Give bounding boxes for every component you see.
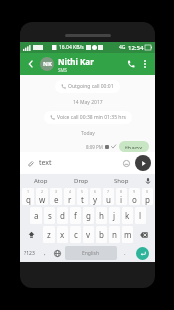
staticText: 1 xyxy=(27,189,30,194)
staticText: w xyxy=(39,194,46,205)
staticText: 2 xyxy=(41,189,44,194)
button[interactable]: English xyxy=(65,246,117,260)
staticText: k xyxy=(125,210,130,221)
staticText: . xyxy=(124,249,126,257)
button[interactable]: b xyxy=(96,226,107,243)
button[interactable]: d xyxy=(57,207,68,224)
button[interactable]: Send xyxy=(135,155,151,171)
button[interactable]: l xyxy=(135,207,146,224)
button[interactable]: Shop xyxy=(101,174,141,187)
button[interactable]: x xyxy=(57,226,68,243)
button[interactable]: More options xyxy=(139,58,151,70)
button[interactable]: s xyxy=(44,207,55,224)
button[interactable]: 3 xyxy=(50,188,62,205)
staticText: Outgoing call 00:01 xyxy=(68,83,114,90)
staticText: r xyxy=(68,194,72,205)
button[interactable]: 9 xyxy=(129,188,140,205)
button[interactable]: m xyxy=(122,226,133,243)
staticText: v xyxy=(86,229,91,240)
button[interactable]: Call xyxy=(123,56,139,72)
staticText: 7 xyxy=(107,189,110,194)
staticText: s xyxy=(48,210,52,221)
button[interactable]: v xyxy=(83,226,94,243)
staticText: l xyxy=(139,210,142,221)
button[interactable]: g xyxy=(83,207,94,224)
button[interactable]: z xyxy=(43,226,55,243)
button[interactable]: 4 xyxy=(64,188,75,205)
button[interactable]: k xyxy=(122,207,133,224)
staticText: o xyxy=(132,194,137,205)
button[interactable]: 2 xyxy=(36,188,48,205)
staticText: i xyxy=(120,194,123,205)
button[interactable]: Shift xyxy=(22,226,41,243)
button[interactable]: Enter xyxy=(136,247,149,260)
button[interactable]: c xyxy=(70,226,81,243)
staticText: x xyxy=(60,229,65,240)
button[interactable]: Language xyxy=(52,245,63,261)
staticText: n xyxy=(112,229,117,240)
staticText: f xyxy=(74,210,77,221)
button[interactable]: a xyxy=(30,207,42,224)
staticText: p xyxy=(145,194,150,205)
button[interactable]: Nithi Kar xyxy=(58,56,123,73)
staticText: a xyxy=(34,210,39,221)
staticText: SMS xyxy=(58,67,68,73)
staticText: English xyxy=(82,250,100,257)
staticText: Atop xyxy=(34,177,48,185)
button[interactable]: 6 xyxy=(90,188,101,205)
staticText: Drop xyxy=(74,177,89,185)
staticText: ?123 xyxy=(24,250,35,257)
button[interactable]: Backspace xyxy=(135,226,153,243)
staticText: 8:09 PM xyxy=(86,144,103,150)
staticText: 12:54 xyxy=(128,44,144,52)
staticText: h xyxy=(99,210,104,221)
button[interactable]: n xyxy=(109,226,120,243)
staticText: 4 xyxy=(69,189,72,194)
staticText: Nithi Kar xyxy=(58,56,94,67)
button[interactable]: h xyxy=(96,207,107,224)
button[interactable]: j xyxy=(109,207,120,224)
staticText: Voice call 00:38 min 01:35 hrs xyxy=(57,114,126,121)
staticText: 8 xyxy=(120,189,123,194)
button[interactable]: Emoji xyxy=(120,157,132,169)
button[interactable]: 8 xyxy=(116,188,127,205)
button[interactable]: Outgoing call 00:01 xyxy=(55,80,120,93)
button[interactable]: f xyxy=(70,207,81,224)
staticText: 3 xyxy=(55,189,58,194)
staticText: j xyxy=(113,210,116,221)
staticText: 16.04 KB/s xyxy=(59,44,84,51)
staticText: c xyxy=(74,229,78,240)
button[interactable]: 5 xyxy=(77,188,88,205)
staticText: NK xyxy=(43,60,52,68)
button[interactable]: Drop xyxy=(61,174,101,187)
button[interactable]: Voice input xyxy=(141,174,155,187)
button[interactable]: 7 xyxy=(103,188,114,205)
button[interactable]: Symbols xyxy=(22,245,37,261)
button[interactable]: 0 xyxy=(142,188,153,205)
staticText: 14 May 2017 xyxy=(73,99,103,106)
staticText: , xyxy=(44,249,46,257)
staticText: b xyxy=(99,229,104,240)
staticText: 6 xyxy=(94,189,97,194)
staticText: 0 xyxy=(146,189,149,194)
staticText: g xyxy=(86,210,91,221)
button[interactable]: Voice call 00:38 min 01:35 hrs xyxy=(44,111,132,124)
button[interactable]: Period xyxy=(119,245,130,261)
button[interactable]: Attach xyxy=(24,157,36,169)
staticText: 5 xyxy=(81,189,84,194)
staticText: text xyxy=(39,158,120,168)
button[interactable]: Comma xyxy=(39,245,50,261)
button[interactable]: Back xyxy=(24,57,38,71)
button[interactable]: thanx xyxy=(119,141,149,152)
staticText: 9 xyxy=(133,189,136,194)
staticText: thanx xyxy=(125,144,143,149)
staticText: 4G xyxy=(119,44,126,51)
staticText: u xyxy=(106,194,111,205)
staticText: e xyxy=(54,194,59,205)
staticText: m xyxy=(124,229,132,240)
button[interactable]: 1 xyxy=(22,188,34,205)
staticText: Today xyxy=(81,130,95,137)
button[interactable]: Atop xyxy=(20,174,61,187)
staticText: Shop xyxy=(114,177,129,185)
staticText: z xyxy=(47,229,51,240)
